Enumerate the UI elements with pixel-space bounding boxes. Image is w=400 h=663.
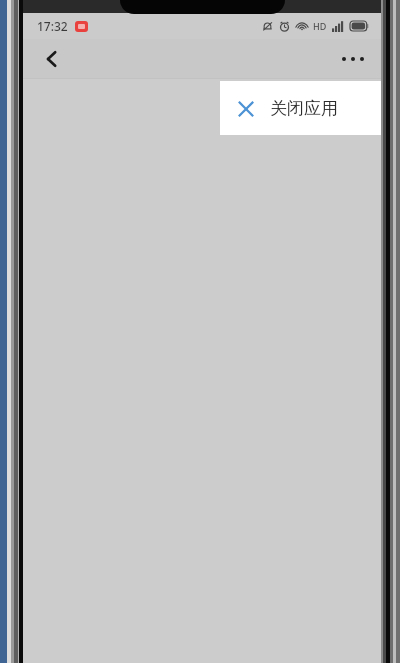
button[interactable]: More options (333, 39, 373, 79)
staticText: 关闭应用 (270, 98, 338, 119)
button[interactable]: Back (33, 40, 71, 78)
staticText: 17:32 (37, 18, 68, 34)
other: Close app (236, 99, 256, 119)
staticText: HD (313, 20, 327, 32)
button[interactable]: Close app (220, 81, 381, 135)
